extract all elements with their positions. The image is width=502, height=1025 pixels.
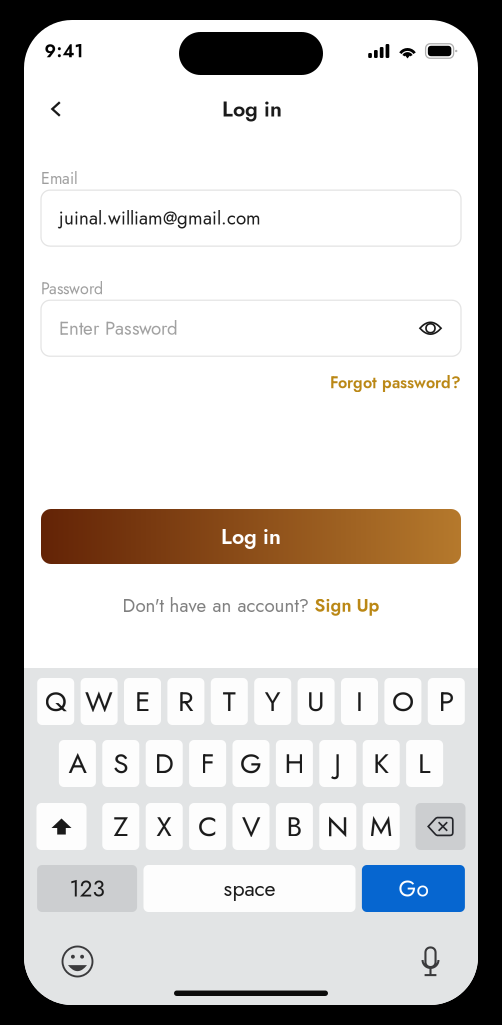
button[interactable]: U [298, 678, 335, 725]
button[interactable]: F [189, 740, 226, 787]
button[interactable]: S [102, 740, 139, 787]
staticText: A [68, 743, 86, 784]
button[interactable]: V [232, 803, 269, 850]
button[interactable]: E [124, 678, 161, 725]
staticText: V [242, 806, 260, 847]
staticText: space [223, 873, 275, 904]
staticText: S [113, 743, 128, 784]
staticText: Log in [222, 94, 282, 124]
staticText: 9:41 [44, 38, 83, 64]
button[interactable]: A [59, 740, 96, 787]
button[interactable]: G [232, 740, 269, 787]
staticText: J [334, 743, 341, 784]
staticText: Password [41, 277, 103, 300]
button[interactable]: K [363, 740, 400, 787]
button[interactable]: T [211, 678, 248, 725]
staticText: C [198, 806, 217, 847]
staticText: Log in [221, 521, 281, 552]
staticText: Go [398, 872, 428, 905]
staticText: O [392, 681, 414, 722]
staticText: L [418, 743, 431, 784]
button[interactable]: C [189, 803, 226, 850]
staticText: F [201, 743, 215, 784]
staticText: K [373, 743, 389, 784]
staticText: Don't have an account? [122, 592, 308, 619]
button[interactable]: D [146, 740, 183, 787]
staticText: R [178, 681, 194, 722]
button[interactable]: Show password [419, 321, 442, 336]
button[interactable]: Dictate [421, 946, 439, 976]
staticText: Enter Password [59, 315, 178, 342]
staticText: Sign Up [314, 592, 379, 618]
button[interactable]: O [384, 678, 421, 725]
button[interactable]: H [276, 740, 313, 787]
button[interactable]: Log in [41, 509, 461, 564]
staticText: Z [113, 806, 128, 847]
staticText: I [356, 681, 363, 722]
button[interactable]: Forgot password? [330, 371, 461, 394]
staticText: H [284, 743, 304, 784]
staticText: P [439, 681, 454, 722]
button[interactable]: W [81, 678, 118, 725]
button[interactable]: P [428, 678, 465, 725]
button[interactable]: X [146, 803, 183, 850]
button[interactable]: space [143, 865, 355, 912]
button[interactable]: I [341, 678, 378, 725]
button[interactable]: Go [362, 865, 465, 912]
button[interactable]: Sign Up [314, 592, 379, 618]
button[interactable]: Z [102, 803, 139, 850]
staticText: E [135, 681, 150, 722]
staticText: N [327, 806, 349, 847]
button[interactable]: 123 [37, 865, 137, 912]
staticText: W [85, 681, 113, 722]
button[interactable]: Shift [36, 803, 86, 850]
button[interactable]: Emoji [62, 946, 92, 976]
button[interactable]: Q [37, 678, 74, 725]
button[interactable]: N [319, 803, 356, 850]
staticText: 123 [70, 872, 105, 905]
button[interactable]: J [319, 740, 356, 787]
button[interactable]: L [406, 740, 443, 787]
staticText: M [370, 806, 393, 847]
button[interactable]: Back [41, 89, 87, 129]
staticText: Forgot password? [330, 371, 461, 394]
staticText: X [156, 806, 172, 847]
button[interactable]: B [276, 803, 313, 850]
staticText: T [223, 681, 236, 722]
staticText: D [155, 743, 174, 784]
staticText: B [286, 806, 302, 847]
button[interactable]: Delete [415, 803, 465, 850]
button[interactable]: Y [254, 678, 291, 725]
button[interactable]: M [363, 803, 400, 850]
staticText: Y [265, 681, 281, 722]
staticText: Email [41, 167, 78, 190]
button[interactable]: R [167, 678, 204, 725]
staticText: juinal.william@gmail.com [59, 205, 261, 232]
staticText: Q [45, 681, 67, 722]
staticText: G [240, 743, 262, 784]
staticText: U [307, 681, 325, 722]
